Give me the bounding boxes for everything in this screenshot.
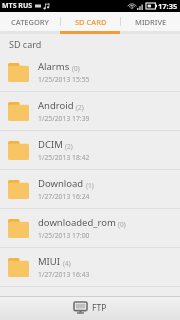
button[interactable]: Download <box>0 170 180 209</box>
staticText: Android <box>38 99 74 112</box>
staticText: MTS RUS <box>2 1 33 11</box>
staticText: CATEGORY <box>11 17 49 27</box>
staticText: SD card <box>9 38 42 50</box>
staticText: (0) <box>118 220 126 229</box>
staticText: 1/25/2013 15:55 <box>38 75 90 84</box>
button[interactable]: CATEGORY <box>0 12 60 31</box>
staticText: Download <box>38 177 84 190</box>
button[interactable]: SD CARD <box>61 12 120 31</box>
staticText: downloaded_rom <box>38 216 116 229</box>
staticText: 1/25/2013 17:39 <box>38 114 90 123</box>
button[interactable]: Android <box>0 92 180 131</box>
staticText: MIUI <box>38 255 61 268</box>
staticText: MIDRIVE <box>135 17 167 27</box>
staticText: DCIM <box>38 138 63 151</box>
button[interactable]: FTP <box>68 299 113 317</box>
button[interactable]: Alarms <box>0 53 180 92</box>
button[interactable]: DCIM <box>0 131 180 170</box>
other: FTP <box>74 302 87 314</box>
staticText: (0) <box>72 64 80 73</box>
staticText: SD CARD <box>75 17 107 27</box>
staticText: (2) <box>76 103 84 112</box>
staticText: 1/27/2013 16:43 <box>38 270 90 279</box>
button[interactable]: MIUI <box>0 248 180 287</box>
staticText: (1) <box>86 181 94 190</box>
staticText: FTP <box>92 302 107 314</box>
staticText: (2) <box>65 142 73 151</box>
staticText: 1/27/2013 16:24 <box>38 192 90 201</box>
staticText: Alarms <box>38 60 70 73</box>
button[interactable]: MIDRIVE <box>121 12 180 31</box>
staticText: 1/25/2013 17:00 <box>38 231 90 240</box>
staticText: (4) <box>63 259 71 268</box>
button[interactable]: downloaded_rom <box>0 209 180 248</box>
staticText: 1/25/2013 18:42 <box>38 153 90 162</box>
staticText: 17:35 <box>158 1 178 11</box>
